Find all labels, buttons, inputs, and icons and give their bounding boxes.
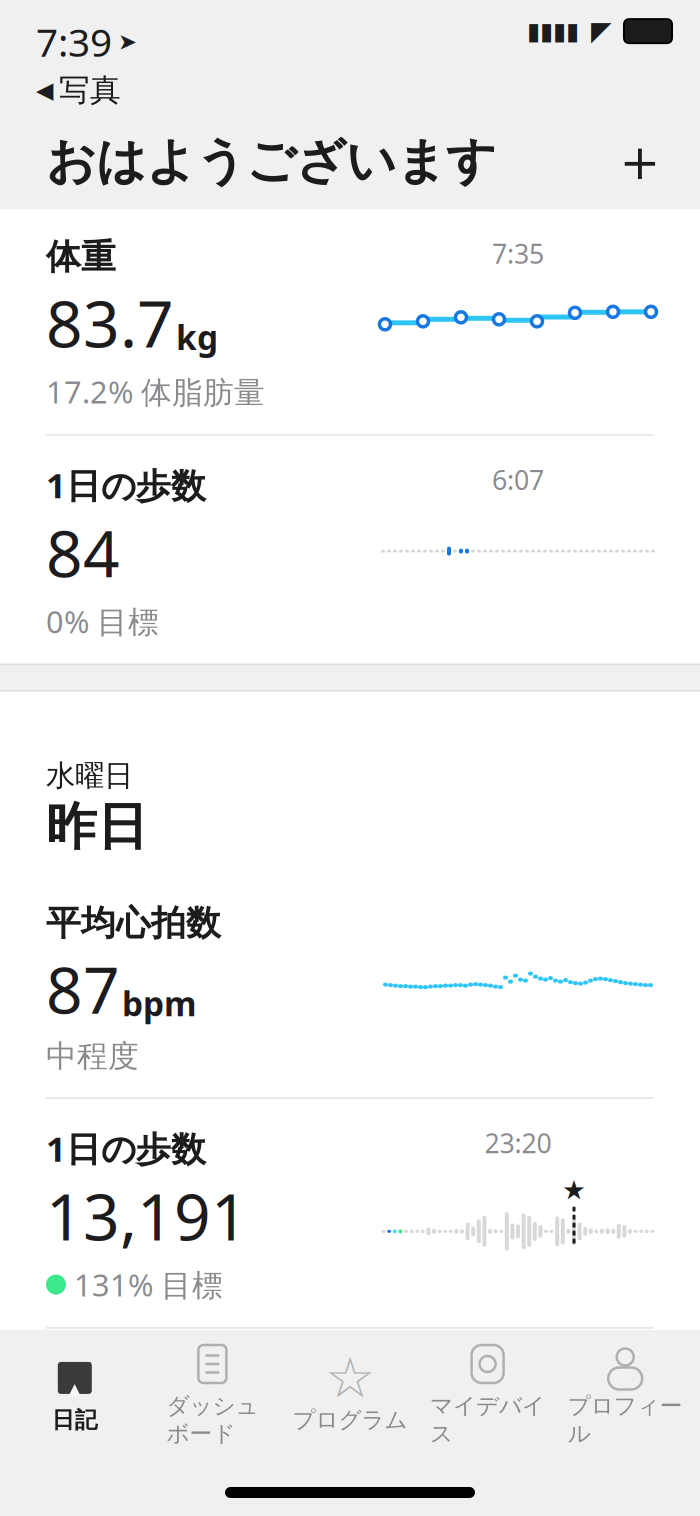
staticText: ▮▮▮▮ — [527, 17, 579, 45]
button[interactable]: 体重 — [0, 210, 700, 436]
button[interactable]: ランニング — [0, 1329, 700, 1516]
staticText: 83.7 — [46, 280, 174, 365]
button[interactable]: 追加 — [612, 133, 668, 189]
staticText: 84 — [46, 510, 120, 595]
staticText: 水曜日 — [46, 758, 133, 794]
staticText: ランニング — [46, 1355, 221, 1397]
staticText: 平均心拍数 — [46, 902, 221, 944]
staticText: 6:07 — [492, 462, 544, 497]
staticText: プログラム — [292, 1406, 407, 1434]
staticText: 昨日 — [46, 796, 148, 858]
staticText: 131% 目標 — [74, 1264, 223, 1305]
staticText: 中程度 — [46, 1037, 139, 1075]
staticText: ダッシュボード — [166, 1392, 258, 1448]
staticText: 12:25 — [484, 1355, 551, 1390]
staticText: 1日の歩数 — [46, 1125, 206, 1171]
staticText: ☆ — [325, 1346, 375, 1410]
staticText: 7:39 — [36, 16, 112, 67]
staticText: ▲ — [59, 1373, 90, 1419]
staticText: 🏃 — [485, 1412, 551, 1473]
staticText: 13,191 — [46, 1173, 248, 1258]
button[interactable]: 1日の歩数 — [0, 1099, 700, 1329]
staticText: 1日の歩数 — [46, 462, 206, 508]
staticText: 日記 — [52, 1406, 98, 1434]
staticText: 17.2% 体脂肪量 — [46, 371, 265, 412]
staticText: マイデバイス — [430, 1392, 545, 1448]
staticText: 0% 目標 — [46, 601, 159, 642]
staticText: 体重 — [46, 236, 116, 278]
button[interactable]: ダッシュボード — [144, 1330, 281, 1458]
staticText: 12 — [46, 1399, 120, 1484]
staticText: bpm — [122, 981, 197, 1025]
button[interactable]: プロフィール — [556, 1330, 694, 1458]
staticText: kg — [176, 315, 218, 359]
button[interactable]: マイデバイス — [419, 1330, 556, 1458]
staticText: ➤ — [118, 29, 137, 54]
staticText: 写真 — [59, 71, 121, 109]
staticText: プロフィール — [568, 1392, 683, 1448]
staticText: ◀ — [36, 77, 53, 103]
button[interactable]: 1日の歩数 — [0, 436, 700, 664]
button[interactable]: ▲ — [6, 1344, 144, 1444]
button[interactable]: 平均心拍数 — [0, 876, 700, 1099]
staticText: ＋ — [610, 125, 669, 197]
button[interactable]: ☆ — [281, 1344, 419, 1444]
staticText: 23:20 — [484, 1125, 551, 1161]
staticText: ★ — [562, 1175, 586, 1205]
staticText: おはようございます — [46, 131, 496, 192]
staticText: 87 — [46, 946, 120, 1031]
button[interactable]: ◀ — [36, 71, 121, 109]
staticText: ◤ — [591, 16, 612, 46]
staticText: 7:35 — [492, 236, 544, 271]
